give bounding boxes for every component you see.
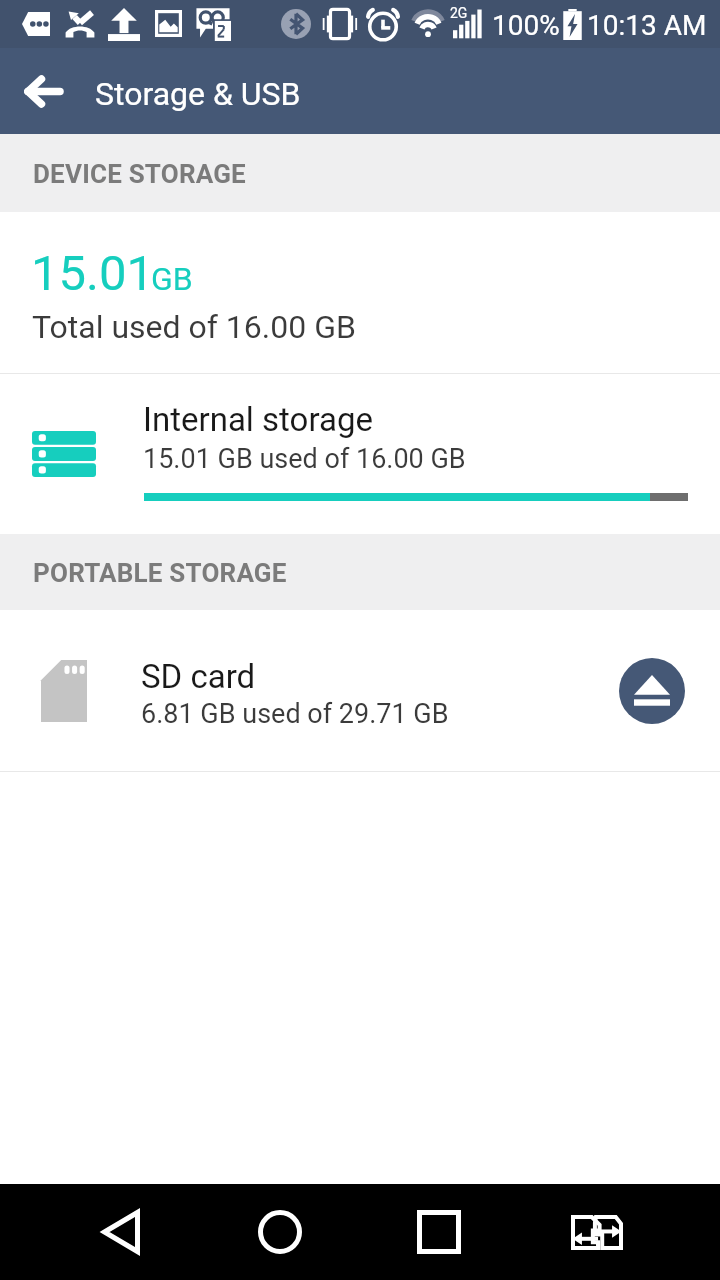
staticText: PORTABLE STORAGE [33,558,287,588]
staticText: 2G [450,5,468,21]
button[interactable]: Recent apps [379,1184,499,1280]
staticText: 6.81 GB used of 29.71 GB [141,698,449,730]
staticText: 15.01 [31,245,155,302]
staticText: SD card [141,657,256,696]
staticText: 10:13 AM [587,9,707,42]
button[interactable]: Home [220,1184,340,1280]
button[interactable]: SD card [0,610,720,771]
staticText: 15.01 GB used of 16.00 GB [143,443,466,475]
button[interactable]: Back [61,1184,181,1280]
button[interactable]: Back [0,48,86,134]
button[interactable]: Switch app [537,1184,657,1280]
staticText: DEVICE STORAGE [33,159,246,189]
staticText: Total used of 16.00 GB [32,308,356,346]
button[interactable]: Internal storage [0,374,720,534]
staticText: 100% [492,9,560,42]
staticText: Internal storage [143,400,373,439]
button[interactable]: Eject SD card [619,658,685,724]
staticText: Storage & USB [95,75,301,113]
button[interactable]: 15.01 [0,212,720,373]
staticText: GB [151,260,193,298]
